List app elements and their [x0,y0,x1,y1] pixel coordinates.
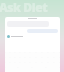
staticText: Ask Diet [0,0,48,15]
